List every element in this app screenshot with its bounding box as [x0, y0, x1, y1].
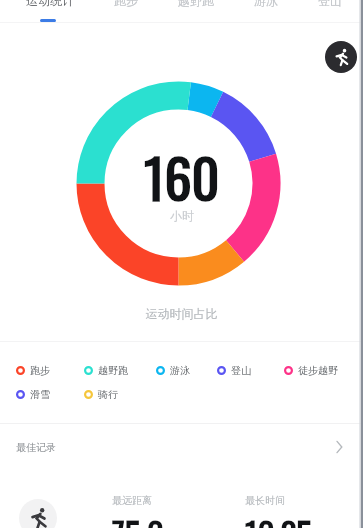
- staticText: 登山: [231, 364, 251, 377]
- button[interactable]: 跑步: [94, 0, 158, 8]
- staticText: 越野跑: [178, 0, 214, 8]
- staticText: 游泳: [254, 0, 278, 8]
- staticText: 徒步越野: [298, 364, 338, 377]
- staticText: 越野跑: [98, 364, 128, 377]
- button[interactable]: 运动统计: [6, 0, 94, 8]
- staticText: 小时: [170, 208, 194, 223]
- button[interactable]: Start workout: [325, 41, 357, 73]
- staticText: 骑行: [98, 388, 118, 401]
- staticText: 16:25: [245, 508, 313, 528]
- staticText: 最长时间: [245, 494, 285, 507]
- staticText: 跑步: [114, 0, 138, 8]
- staticText: 75.6: [112, 508, 164, 528]
- button[interactable]: 骑行: [84, 388, 118, 401]
- staticText: 160: [144, 137, 220, 217]
- button[interactable]: Running record: [19, 499, 57, 528]
- button[interactable]: 游泳: [156, 364, 190, 377]
- button[interactable]: 越野跑: [158, 0, 234, 8]
- staticText: 滑雪: [30, 388, 50, 401]
- button[interactable]: 游泳: [234, 0, 298, 8]
- button[interactable]: 越野跑: [84, 364, 128, 377]
- button[interactable]: 滑雪: [16, 388, 50, 401]
- staticText: 游泳: [170, 364, 190, 377]
- staticText: 运动时间占比: [0, 306, 363, 321]
- staticText: 最佳记录: [16, 441, 56, 454]
- button[interactable]: 跑步: [16, 364, 50, 377]
- staticText: 运动统计: [26, 0, 74, 8]
- button[interactable]: 登山: [217, 364, 251, 377]
- button[interactable]: 登山: [298, 0, 362, 8]
- button[interactable]: 徒步越野: [284, 364, 338, 377]
- button[interactable]: 最佳记录: [0, 437, 363, 457]
- staticText: 登山: [318, 0, 342, 8]
- staticText: 跑步: [30, 364, 50, 377]
- staticText: 最远距离: [112, 494, 152, 507]
